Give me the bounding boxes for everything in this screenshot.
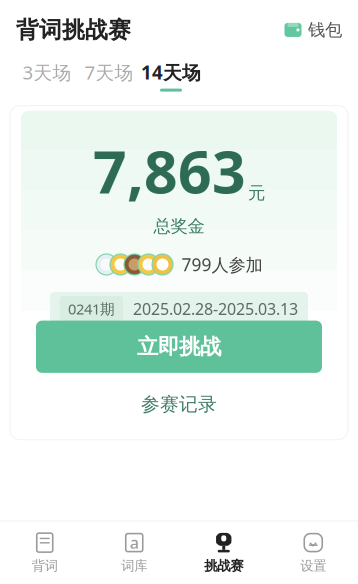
- staticText: 立即挑战: [137, 334, 221, 360]
- button[interactable]: 14天场: [140, 56, 202, 96]
- staticText: 7,863: [93, 132, 246, 210]
- staticText: 元: [248, 182, 265, 204]
- staticText: 设置: [300, 558, 326, 574]
- button[interactable]: 立即挑战: [36, 321, 322, 373]
- staticText: ⌄: [306, 531, 321, 550]
- staticText: 词库: [121, 558, 147, 574]
- staticText: 参赛记录: [141, 393, 217, 416]
- button[interactable]: ⌄: [268, 530, 358, 576]
- button[interactable]: 背词: [0, 530, 89, 576]
- staticText: 2025.02.28-2025.03.13: [133, 298, 298, 319]
- staticText: 799人参加: [181, 253, 262, 276]
- staticText: 0241期: [68, 299, 115, 318]
- staticText: 挑战赛: [204, 558, 243, 574]
- staticText: a: [130, 532, 139, 553]
- staticText: 背词: [32, 558, 58, 574]
- button[interactable]: 3天场: [16, 56, 78, 96]
- button[interactable]: a: [89, 530, 179, 576]
- button[interactable]: 挑战赛: [179, 530, 268, 576]
- staticText: 钱包: [308, 19, 342, 41]
- staticText: 总奖金: [153, 216, 204, 237]
- staticText: 3天场: [22, 60, 71, 85]
- button[interactable]: 参赛记录: [121, 387, 237, 422]
- button[interactable]: 7天场: [78, 56, 140, 96]
- staticText: 7天场: [84, 60, 133, 85]
- staticText: 背词挑战赛: [16, 16, 131, 44]
- staticText: 14天场: [141, 60, 201, 85]
- button[interactable]: 钱包: [284, 19, 342, 41]
